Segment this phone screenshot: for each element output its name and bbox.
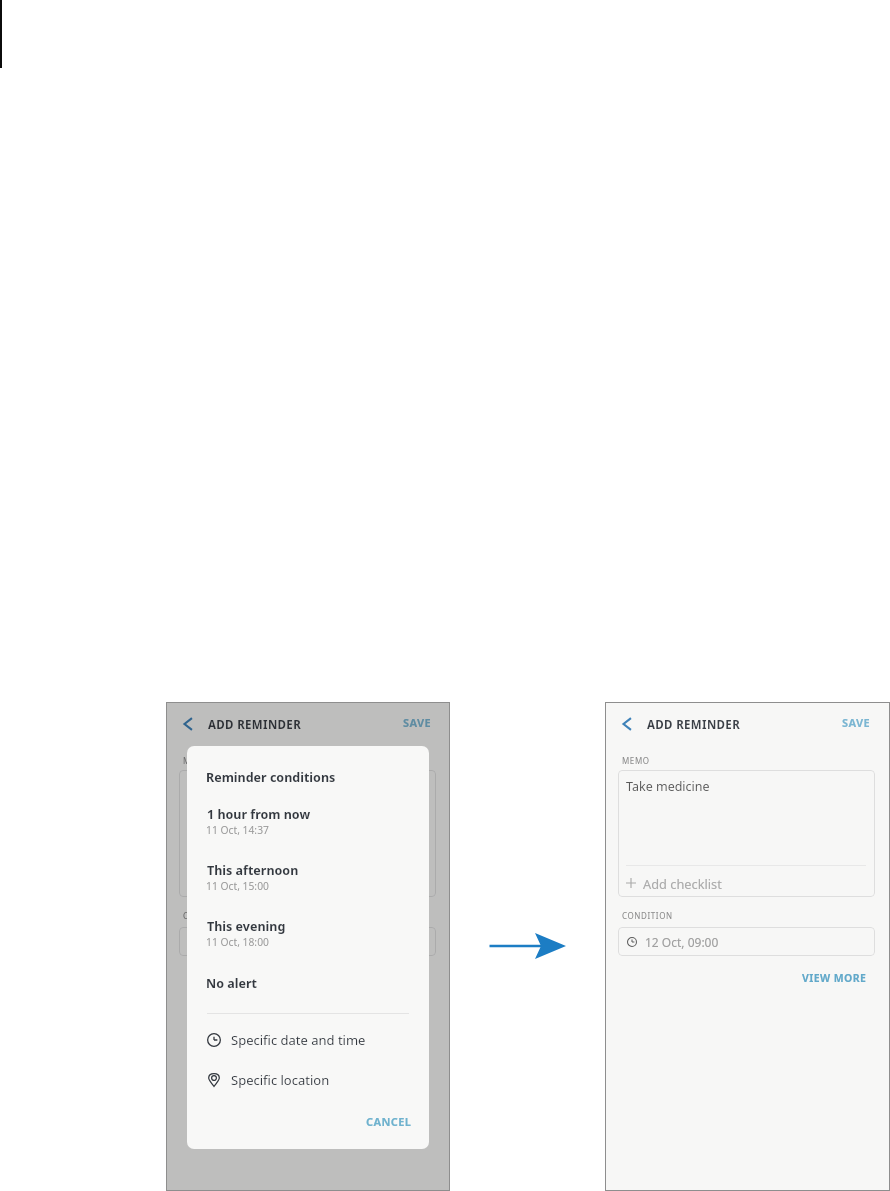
staticText: SAVE [403, 715, 432, 730]
staticText: This afternoon [207, 862, 299, 879]
button[interactable]: This afternoon [187, 862, 429, 904]
staticText: SAVE [842, 715, 871, 730]
button[interactable]: Specific date and time [207, 1028, 409, 1052]
staticText: VIEW MORE [802, 971, 867, 985]
button[interactable]: 12 Oct, 09:00 [618, 927, 875, 956]
button[interactable]: Back [616, 713, 638, 735]
button[interactable]: 12 Oct, 09:00 [179, 927, 436, 956]
button[interactable]: 1 hour from now [187, 806, 429, 848]
staticText: Specific date and time [231, 1031, 366, 1049]
button[interactable]: Take medicine [618, 770, 873, 864]
staticText: 11 Oct, 18:00 [206, 935, 269, 949]
staticText: 11 Oct, 15:00 [206, 879, 269, 893]
button[interactable]: CANCEL [361, 1109, 417, 1133]
staticText: CONDITION [622, 910, 673, 921]
button[interactable]: No alert [187, 975, 429, 1001]
staticText: Reminder conditions [206, 769, 336, 786]
staticText: 11 Oct, 14:37 [206, 823, 269, 837]
staticText: Add checklist [643, 875, 722, 892]
staticText: CANCEL [366, 1114, 412, 1129]
staticText: Add checklist [204, 875, 283, 892]
staticText: No alert [206, 975, 257, 992]
staticText: This evening [207, 918, 286, 935]
button[interactable]: Specific location [207, 1068, 409, 1092]
button[interactable]: SAVE [403, 715, 432, 733]
staticText: Take medicine [187, 778, 271, 795]
button[interactable]: Back [177, 713, 199, 735]
staticText: Specific location [231, 1071, 330, 1089]
staticText: MEMO [183, 755, 211, 766]
button[interactable]: VIEW MORE [359, 969, 431, 987]
button[interactable]: Add checklist [187, 871, 427, 895]
staticText: 1 hour from now [207, 806, 311, 823]
staticText: ADD REMINDER [647, 717, 741, 733]
staticText: 12 Oct, 09:00 [206, 934, 280, 950]
staticText: 12 Oct, 09:00 [645, 934, 719, 950]
button[interactable]: VIEW MORE [798, 969, 870, 987]
button[interactable]: Take medicine [179, 770, 434, 864]
staticText: Take medicine [626, 778, 710, 795]
staticText: CONDITION [183, 910, 234, 921]
button[interactable]: Add checklist [626, 871, 866, 895]
staticText: MEMO [622, 755, 650, 766]
staticText: ADD REMINDER [208, 717, 302, 733]
button[interactable]: This evening [187, 918, 429, 960]
button[interactable]: SAVE [842, 715, 871, 733]
